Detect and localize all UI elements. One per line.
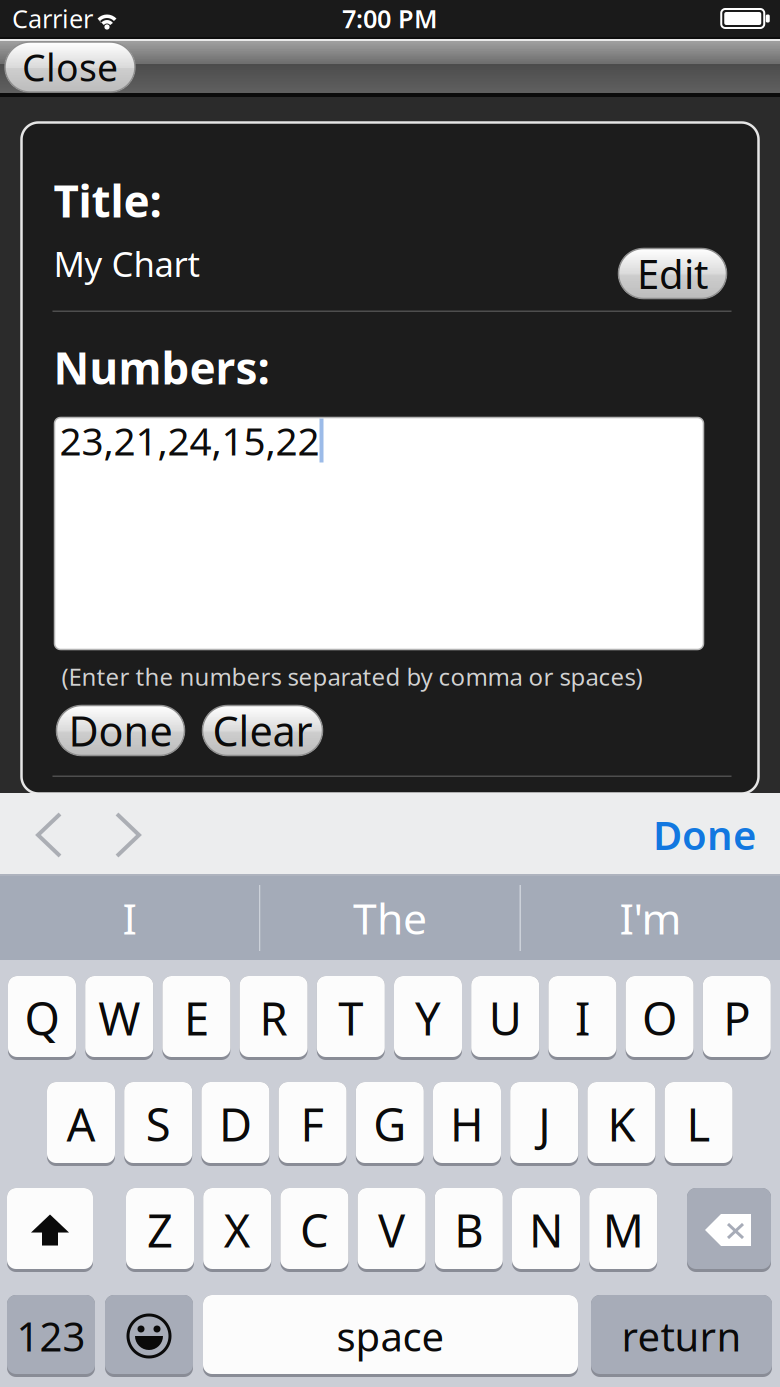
button[interactable]: I'm (521, 876, 780, 960)
staticText: I (122, 890, 136, 946)
staticText: S (146, 1094, 171, 1154)
staticText: 23,21,24,15,22 (59, 415, 319, 466)
button[interactable]: J (510, 1082, 578, 1166)
staticText: Clear (212, 703, 312, 758)
button[interactable]: Numbers and symbols (7, 1295, 95, 1377)
button[interactable]: C (280, 1188, 348, 1272)
button[interactable]: A (47, 1082, 115, 1166)
button[interactable]: Delete (687, 1188, 771, 1272)
button[interactable]: H (433, 1082, 501, 1166)
button[interactable]: Shift (7, 1188, 93, 1272)
button[interactable]: R (240, 976, 308, 1060)
button[interactable]: return (591, 1295, 772, 1377)
button[interactable]: L (665, 1082, 733, 1166)
button[interactable]: Next field (81, 793, 161, 876)
staticText: Numbers: (53, 338, 269, 397)
staticText: 123 (16, 1309, 85, 1362)
staticText: X (224, 1200, 251, 1260)
button[interactable]: P (703, 976, 771, 1060)
button[interactable]: space (203, 1295, 578, 1377)
staticText: The (353, 890, 427, 946)
button[interactable]: W (85, 976, 153, 1060)
staticText: Close (22, 42, 118, 92)
staticText: O (642, 988, 677, 1048)
button[interactable]: V (358, 1188, 426, 1272)
button[interactable]: F (279, 1082, 347, 1166)
staticText: 7:00 PM (342, 2, 438, 35)
button[interactable]: The (260, 876, 519, 960)
staticText: K (607, 1094, 635, 1154)
button[interactable]: Done (56, 705, 184, 755)
button[interactable]: Edit (618, 248, 726, 298)
button[interactable]: B (435, 1188, 503, 1272)
staticText: F (301, 1094, 325, 1154)
button[interactable]: N (512, 1188, 580, 1272)
staticText: (Enter the numbers separated by comma or… (61, 661, 642, 692)
staticText: U (489, 988, 522, 1048)
staticText: Done (653, 808, 756, 861)
staticText: My Chart (53, 240, 200, 286)
staticText: Q (24, 988, 59, 1048)
button[interactable]: I (548, 976, 616, 1060)
staticText: E (184, 988, 209, 1048)
button[interactable]: G (356, 1082, 424, 1166)
button[interactable]: Y (394, 976, 462, 1060)
staticText: space (336, 1309, 444, 1362)
button[interactable]: D (201, 1082, 269, 1166)
staticText: M (603, 1200, 644, 1260)
button[interactable]: Close (5, 42, 135, 92)
button[interactable]: Clear (202, 705, 322, 755)
staticText: W (98, 988, 140, 1048)
staticText: Z (147, 1200, 173, 1260)
staticText: N (529, 1200, 563, 1260)
staticText: Title: (53, 171, 161, 230)
staticText: I (575, 988, 590, 1048)
button[interactable]: M (589, 1188, 657, 1272)
staticText: J (538, 1094, 550, 1154)
button[interactable]: Done (636, 793, 756, 876)
staticText: return (621, 1309, 741, 1362)
staticText: T (338, 988, 363, 1048)
staticText: Done (68, 703, 172, 758)
staticText: D (219, 1094, 252, 1154)
button[interactable]: S (124, 1082, 192, 1166)
button[interactable]: Z (126, 1188, 194, 1272)
staticText: A (66, 1094, 95, 1154)
staticText: R (260, 988, 288, 1048)
staticText: L (687, 1094, 711, 1154)
button[interactable]: Emoji (105, 1295, 193, 1377)
staticText: I'm (619, 890, 681, 946)
button[interactable]: Previous field (1, 793, 81, 876)
staticText: P (723, 988, 750, 1048)
button[interactable]: E (162, 976, 230, 1060)
staticText: Y (415, 988, 441, 1048)
button[interactable]: Q (8, 976, 76, 1060)
staticText: V (378, 1200, 405, 1260)
staticText: Edit (637, 247, 708, 300)
staticText: C (300, 1200, 329, 1260)
staticText: G (373, 1094, 406, 1154)
button[interactable]: T (317, 976, 385, 1060)
button[interactable]: U (471, 976, 539, 1060)
staticText: Carrier (12, 2, 93, 35)
staticText: B (454, 1200, 483, 1260)
button[interactable]: I (0, 876, 259, 960)
button[interactable]: X (203, 1188, 271, 1272)
staticText: H (450, 1094, 484, 1154)
button[interactable]: K (587, 1082, 655, 1166)
button[interactable]: O (626, 976, 694, 1060)
